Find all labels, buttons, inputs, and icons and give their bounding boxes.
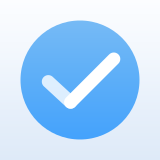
button[interactable]: Completed (0, 0, 160, 160)
